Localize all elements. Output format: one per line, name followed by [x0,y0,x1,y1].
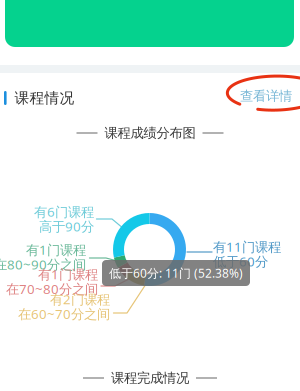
staticText: 在60~70分之间 [18,305,110,323]
staticText: 有1门课程 [26,241,86,258]
staticText: 有6门课程 [34,203,94,220]
button[interactable]: 课程情况 [0,82,180,114]
staticText: 课程成绩分布图 [104,125,195,141]
staticText: 在70~80分之间 [6,280,98,298]
staticText: 高于90分 [39,217,94,235]
staticText: 课程完成情况 [111,370,189,386]
staticText: 在80~90分之间 [0,255,86,273]
staticText: 低于60分: 11门 (52.38%) [109,265,243,281]
staticText: 课程情况 [15,89,75,107]
button[interactable]: 查看详情 [232,83,300,109]
staticText: 查看详情 [240,88,292,104]
staticText: 低于60分 [213,252,268,270]
staticText: 有11门课程 [213,238,281,255]
staticText: 有2门课程 [50,290,110,308]
staticText: 有1门课程 [38,265,98,283]
